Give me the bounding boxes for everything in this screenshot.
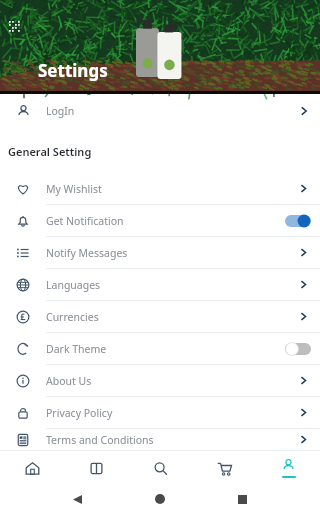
button[interactable]: Cart (192, 450, 256, 486)
staticText: Terms and Conditions (46, 433, 154, 447)
button[interactable]: Get Notification (0, 205, 320, 237)
button[interactable]: Privacy Policy (0, 397, 320, 429)
button[interactable]: Menu (2, 14, 28, 40)
staticText: LogIn (46, 104, 75, 118)
button[interactable]: Dark Theme (0, 333, 320, 365)
staticText: Notify Messages (46, 246, 128, 260)
staticText: Get Notification (46, 214, 124, 228)
button[interactable]: Terms and Conditions (0, 429, 320, 450)
button[interactable]: About Us (0, 365, 320, 397)
button[interactable]: Profile (256, 450, 320, 486)
button[interactable]: Languages (0, 269, 320, 301)
button[interactable]: Search (128, 450, 192, 486)
staticText: Dark Theme (46, 342, 107, 356)
staticText: Languages (46, 278, 101, 292)
button[interactable]: Home (0, 450, 64, 486)
staticText: My Wishlist (46, 182, 102, 196)
staticText: Settings (38, 59, 108, 82)
button[interactable]: Catalog (64, 450, 128, 486)
button[interactable]: Notify Messages (0, 237, 320, 269)
staticText: Currencies (46, 310, 99, 324)
staticText: About Us (46, 374, 92, 388)
button[interactable]: LogIn (0, 94, 320, 128)
staticText: General Setting (8, 144, 92, 159)
staticText: Privacy Policy (46, 406, 113, 420)
button[interactable]: Currencies (0, 301, 320, 333)
button[interactable]: My Wishlist (0, 173, 320, 205)
